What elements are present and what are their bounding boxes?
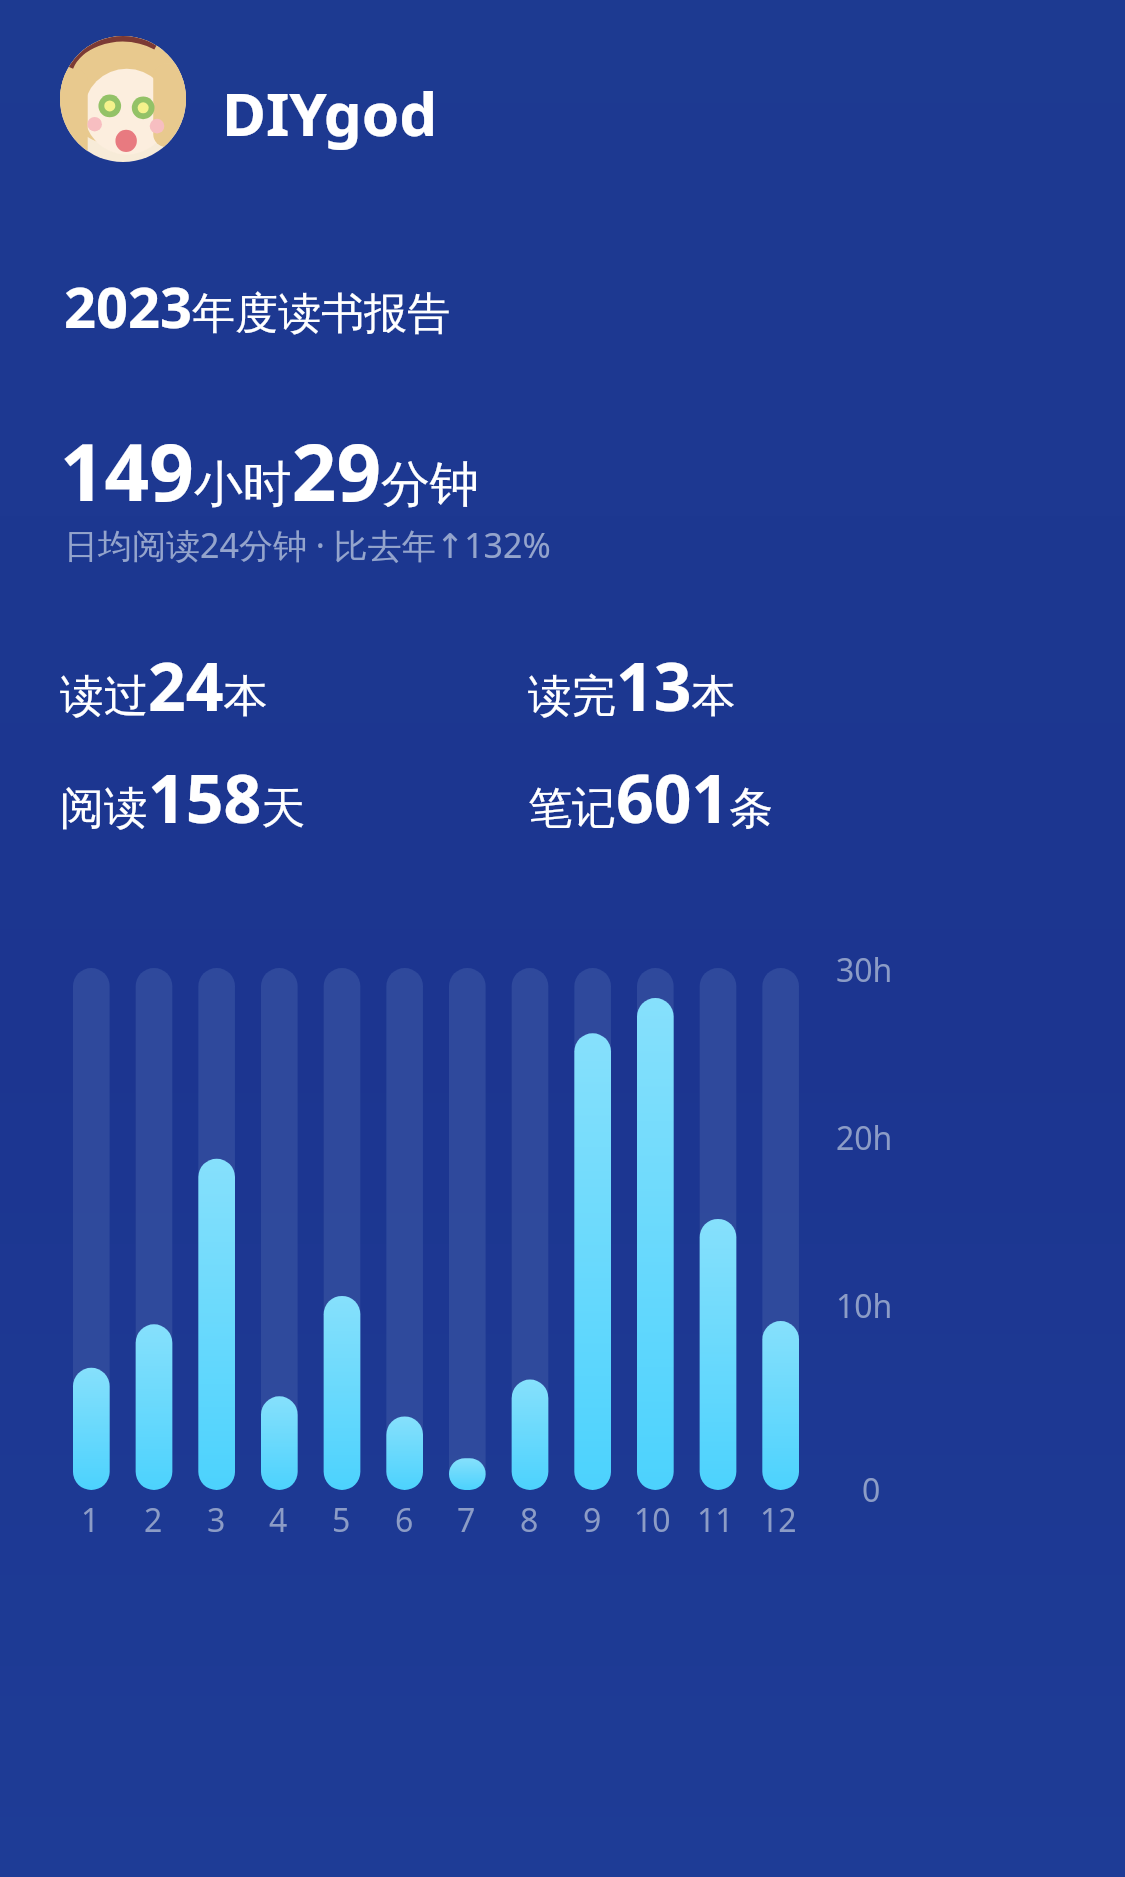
button[interactable]: 读过24本: [60, 640, 268, 730]
staticText: 读过24本: [60, 640, 268, 730]
staticText: 2: [144, 1498, 163, 1542]
staticText: 12: [760, 1498, 797, 1542]
staticText: 1: [81, 1498, 100, 1542]
staticText: 10: [634, 1498, 671, 1542]
button[interactable]: Profile avatar: [60, 36, 186, 162]
staticText: 笔记601条: [528, 752, 774, 842]
staticText: 3: [207, 1498, 226, 1542]
staticText: DIYgod: [222, 72, 438, 154]
staticText: 20h: [836, 1116, 893, 1160]
staticText: 4: [269, 1498, 288, 1542]
staticText: 阅读158天: [60, 752, 306, 842]
staticText: 0: [862, 1468, 881, 1512]
staticText: 5: [332, 1498, 351, 1542]
button[interactable]: 读完13本: [528, 640, 736, 730]
staticText: 日均阅读24分钟 · 比去年↑132%: [64, 522, 551, 568]
staticText: 9: [583, 1498, 602, 1542]
button[interactable]: 笔记601条: [528, 752, 774, 842]
staticText: 30h: [836, 948, 893, 992]
staticText: 6: [395, 1498, 414, 1542]
button[interactable]: 阅读158天: [60, 752, 306, 842]
staticText: 10h: [836, 1284, 893, 1328]
button[interactable]: DIYgod: [222, 72, 438, 154]
staticText: 读完13本: [528, 640, 736, 730]
staticText: 2023年度读书报告: [64, 268, 451, 344]
staticText: 7: [457, 1498, 476, 1542]
staticText: 8: [520, 1498, 539, 1542]
staticText: 11: [697, 1498, 734, 1542]
staticText: 149小时29分钟: [60, 418, 480, 524]
